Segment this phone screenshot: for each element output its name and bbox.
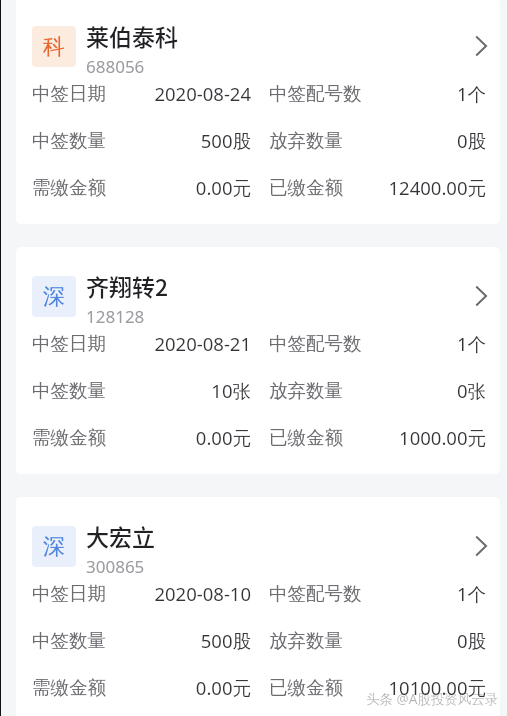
staticText: 300865 [86, 555, 145, 578]
staticText: 头条 @A股投资风云录 [366, 690, 499, 708]
staticText: 中签配号数 [269, 332, 362, 355]
button[interactable]: 科 [16, 0, 500, 224]
staticText: 中签配号数 [269, 82, 362, 105]
staticText: 需缴金额 [32, 676, 106, 699]
staticText: 已缴金额 [269, 676, 343, 699]
staticText: 0股 [343, 628, 486, 653]
staticText: 放弃数量 [269, 379, 343, 402]
staticText: 科 [43, 33, 65, 61]
staticText: 2020-08-24 [106, 81, 251, 106]
staticText: 中签数量 [32, 379, 106, 402]
staticText: 688056 [86, 55, 145, 78]
staticText: 深 [43, 283, 65, 311]
staticText: 0.00元 [106, 175, 251, 200]
staticText: 128128 [86, 305, 145, 328]
staticText: 中签配号数 [269, 582, 362, 605]
staticText: 2020-08-21 [106, 331, 251, 356]
staticText: 中签日期 [32, 582, 106, 605]
button[interactable]: 深 [16, 497, 500, 716]
button[interactable]: 深 [16, 247, 500, 474]
staticText: 10100.00元 [343, 675, 486, 700]
staticText: 中签日期 [32, 332, 106, 355]
staticText: 中签数量 [32, 129, 106, 152]
staticText: 1000.00元 [343, 425, 486, 450]
staticText: 1个 [362, 81, 486, 106]
other: Details [475, 286, 488, 306]
staticText: 已缴金额 [269, 176, 343, 199]
staticText: 500股 [106, 128, 251, 153]
staticText: 莱伯泰科 [86, 19, 178, 52]
staticText: 深 [43, 533, 65, 561]
staticText: 2020-08-10 [106, 581, 251, 606]
other: Details [475, 536, 488, 556]
staticText: 0.00元 [106, 675, 251, 700]
staticText: 500股 [106, 628, 251, 653]
staticText: 中签数量 [32, 629, 106, 652]
staticText: 10张 [106, 378, 251, 403]
staticText: 0张 [343, 378, 486, 403]
staticText: 1个 [362, 331, 486, 356]
staticText: 0股 [343, 128, 486, 153]
staticText: 已缴金额 [269, 426, 343, 449]
staticText: 1个 [362, 581, 486, 606]
staticText: 放弃数量 [269, 129, 343, 152]
other: Details [475, 36, 488, 56]
staticText: 放弃数量 [269, 629, 343, 652]
staticText: 大宏立 [86, 519, 155, 552]
staticText: 中签日期 [32, 82, 106, 105]
staticText: 需缴金额 [32, 176, 106, 199]
staticText: 12400.00元 [343, 175, 486, 200]
staticText: 0.00元 [106, 425, 251, 450]
staticText: 需缴金额 [32, 426, 106, 449]
staticText: 齐翔转2 [86, 269, 169, 302]
